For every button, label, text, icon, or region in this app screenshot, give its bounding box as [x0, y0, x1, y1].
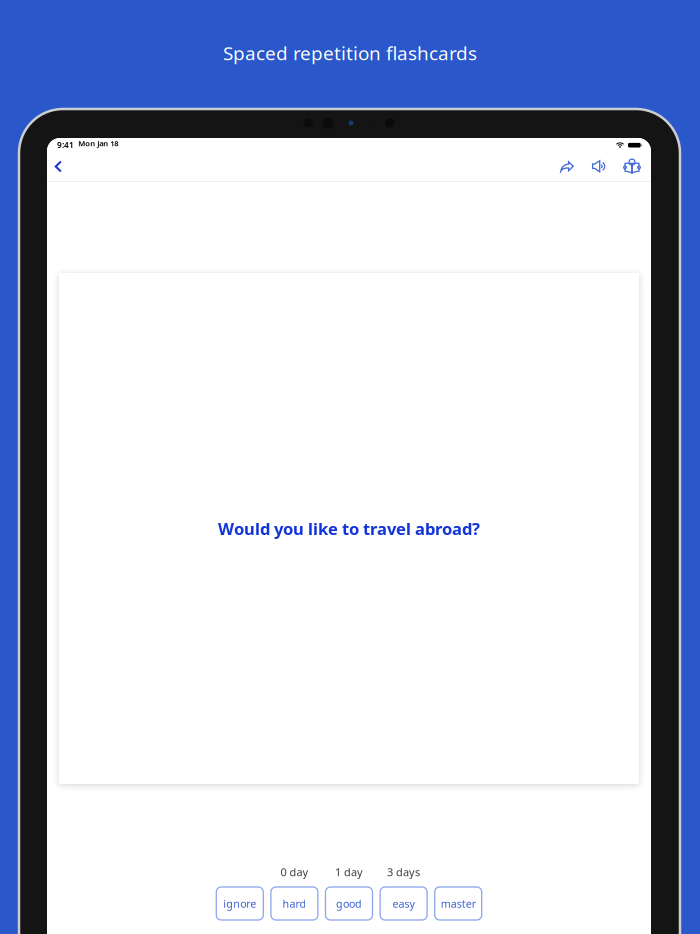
- button[interactable]: good: [325, 887, 372, 920]
- button[interactable]: Share: [553, 152, 581, 181]
- staticText: ignore: [223, 896, 256, 911]
- button[interactable]: Reader mode: [618, 152, 646, 181]
- staticText: good: [336, 896, 362, 911]
- staticText: Mon Jan 18: [78, 138, 118, 148]
- staticText: 3 days: [387, 865, 420, 879]
- button[interactable]: Speak aloud: [584, 152, 612, 181]
- button[interactable]: Back: [44, 152, 72, 181]
- staticText: [455, 857, 461, 887]
- button[interactable]: hard: [271, 887, 318, 920]
- button[interactable]: master: [435, 887, 482, 920]
- button[interactable]: easy: [380, 887, 427, 920]
- button[interactable]: ignore: [216, 887, 263, 920]
- staticText: Would you like to travel abroad?: [218, 517, 480, 540]
- staticText: easy: [393, 896, 415, 911]
- staticText: 0 day: [280, 865, 308, 879]
- staticText: master: [441, 896, 476, 911]
- staticText: 9:41: [57, 139, 74, 150]
- staticText: [237, 857, 243, 887]
- staticText: hard: [282, 896, 306, 911]
- staticText: 1 day: [335, 865, 363, 879]
- staticText: Spaced repetition flashcards: [223, 40, 477, 66]
